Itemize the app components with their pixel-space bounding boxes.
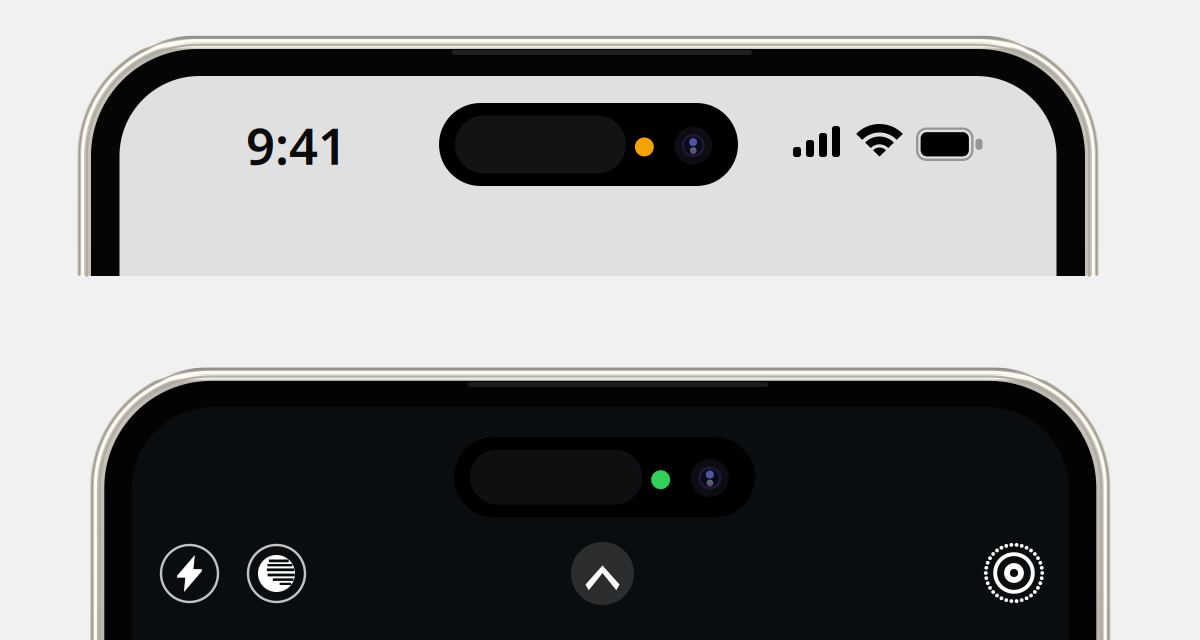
button[interactable]: Camera Control [0, 0, 1200, 640]
staticText: 9:41 [246, 111, 347, 179]
button[interactable]: Battery [0, 0, 1200, 640]
button[interactable]: Wi-Fi [0, 0, 1200, 640]
button[interactable]: 9:41 [0, 0, 1200, 640]
button[interactable]: More camera controls [0, 0, 1200, 640]
button[interactable]: Cellular signal [0, 0, 1200, 640]
button[interactable]: Photographic styles [0, 0, 1200, 640]
button[interactable]: Flash [0, 0, 1200, 640]
